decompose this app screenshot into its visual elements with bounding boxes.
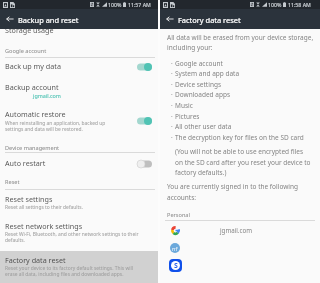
staticText: The decryption key for files on the SD c…: [175, 133, 304, 142]
staticText: Downloaded apps: [175, 90, 231, 99]
staticText: Backup account: [5, 82, 59, 92]
staticText: Factory data reset: [178, 15, 241, 25]
staticText: ·: [171, 112, 173, 121]
staticText: You are currently signed in to the follo…: [167, 182, 298, 191]
staticText: jgmail.com: [220, 226, 253, 234]
button[interactable]: [0, 155, 158, 173]
button[interactable]: [0, 251, 158, 283]
button[interactable]: Back: [4, 13, 16, 25]
staticText: System and app data: [175, 69, 240, 78]
staticText: S: [174, 261, 178, 270]
staticText: Reset settings: [5, 194, 53, 204]
staticText: jgmail.com: [33, 92, 61, 99]
button[interactable]: Account: [163, 224, 317, 240]
staticText: Automatic restore: [5, 109, 66, 119]
staticText: accounts:: [167, 193, 197, 202]
staticText: Google account: [5, 47, 47, 55]
staticText: ·: [171, 90, 173, 99]
staticText: Reset: [5, 178, 20, 186]
button[interactable]: [0, 215, 158, 249]
staticText: settings and data will be restored.: [5, 126, 83, 133]
staticText: nf: [172, 245, 178, 252]
staticText: Reset all settings to their defaults.: [5, 204, 84, 211]
staticText: defaults.: [5, 237, 25, 244]
button[interactable]: Back: [164, 13, 176, 25]
button[interactable]: Account: [163, 259, 317, 275]
staticText: factory defaults.): [175, 168, 227, 177]
staticText: ·: [171, 101, 173, 110]
staticText: Auto restart: [5, 158, 46, 168]
staticText: erase all data, including files and down…: [5, 271, 124, 278]
staticText: Reset network settings: [5, 221, 83, 231]
button[interactable]: [0, 58, 158, 76]
staticText: including your:: [167, 43, 213, 52]
staticText: Google account: [175, 59, 223, 68]
staticText: Factory data reset: [5, 255, 66, 265]
staticText: ·: [171, 133, 173, 142]
staticText: Back up my data: [5, 61, 61, 71]
button[interactable]: [0, 190, 158, 214]
staticText: (You will not be able to use encrypted f…: [175, 147, 304, 156]
staticText: Pictures: [175, 112, 200, 121]
staticText: 100%: [268, 1, 282, 8]
button[interactable]: [0, 101, 158, 133]
staticText: on the SD card after you reset your devi…: [175, 158, 311, 167]
staticText: 100%: [108, 1, 122, 8]
staticText: Reset Wi-Fi, Bluetooth, and other networ…: [5, 231, 139, 238]
staticText: All data will be erased from your device…: [167, 33, 314, 42]
staticText: Personal: [167, 211, 190, 219]
staticText: Backup and reset: [18, 15, 79, 25]
button[interactable]: Account: [163, 241, 317, 257]
staticText: Reset your device to its factory default…: [5, 265, 134, 272]
staticText: Music: [175, 101, 193, 110]
staticText: 11:58 AM: [288, 1, 311, 8]
staticText: ·: [171, 80, 173, 89]
staticText: 11:57 AM: [128, 1, 151, 8]
button[interactable]: [0, 78, 158, 99]
staticText: When reinstalling an application, backed…: [5, 120, 106, 127]
staticText: Device management: [5, 144, 60, 152]
staticText: Storage usage: [5, 25, 54, 35]
staticText: All other user data: [175, 122, 232, 131]
staticText: ·: [171, 69, 173, 78]
staticText: ·: [171, 59, 173, 68]
staticText: ·: [171, 122, 173, 131]
staticText: Device settings: [175, 80, 222, 89]
